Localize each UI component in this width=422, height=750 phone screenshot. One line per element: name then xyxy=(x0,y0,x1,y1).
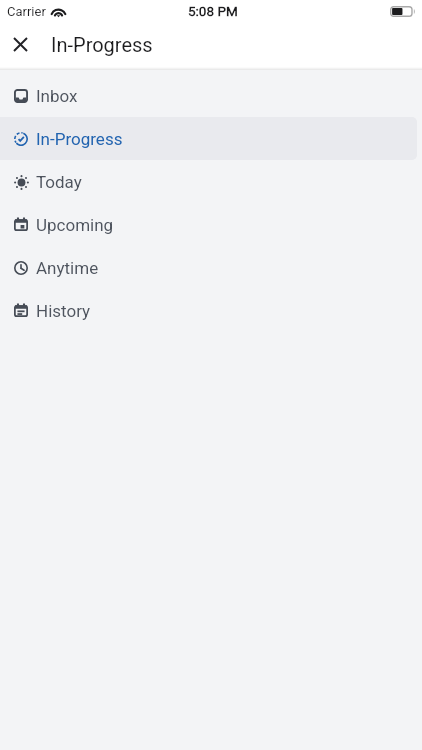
button[interactable]: In-Progress xyxy=(0,117,417,160)
button[interactable]: Inbox xyxy=(0,74,417,117)
staticText: Today xyxy=(36,172,82,192)
button[interactable]: Close xyxy=(0,24,40,64)
staticText: In-Progress xyxy=(51,33,153,56)
button[interactable]: Upcoming xyxy=(0,203,417,246)
staticText: Anytime xyxy=(36,258,99,278)
staticText: In-Progress xyxy=(36,129,123,149)
button[interactable]: Anytime xyxy=(0,246,417,289)
staticText: Upcoming xyxy=(36,215,114,235)
staticText: Inbox xyxy=(36,86,78,106)
staticText: Carrier xyxy=(7,4,46,19)
staticText: History xyxy=(36,301,91,321)
button[interactable]: History xyxy=(0,289,417,332)
button[interactable]: Today xyxy=(0,160,417,203)
staticText: 5:08 PM xyxy=(188,3,238,19)
